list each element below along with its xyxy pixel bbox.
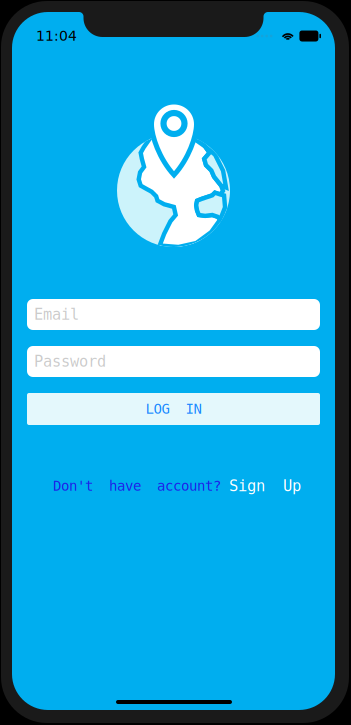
staticText: Password	[34, 353, 106, 370]
staticText: 11:04	[36, 28, 77, 44]
staticText: Sign Up	[229, 477, 301, 495]
button[interactable]: LOG IN	[27, 393, 320, 425]
staticText: Don't have account?	[53, 478, 221, 494]
staticText: LOG IN	[145, 401, 201, 417]
button[interactable]: Don't have account?	[53, 476, 301, 496]
staticText: Email	[34, 306, 79, 323]
